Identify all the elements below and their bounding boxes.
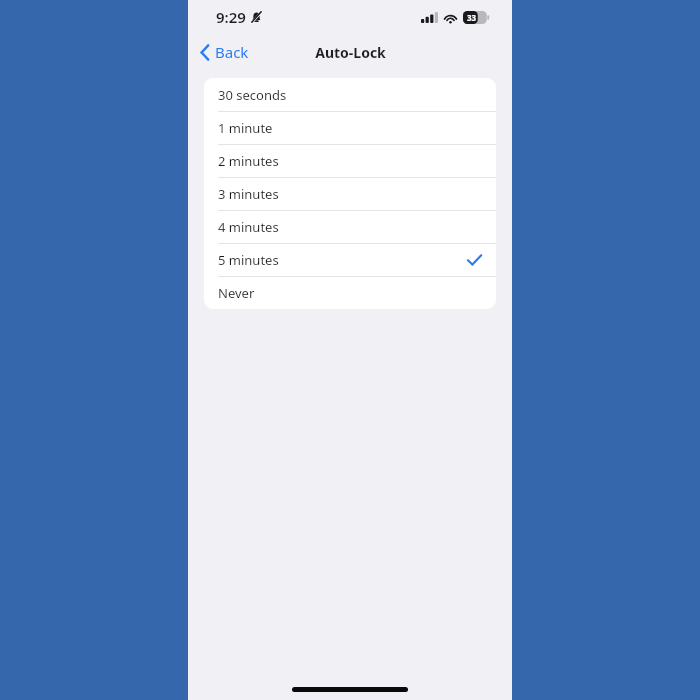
button[interactable]: 2 minutes (204, 145, 496, 177)
staticText: 33 (467, 12, 477, 23)
button[interactable]: 1 minute (204, 112, 496, 144)
staticText: Never (218, 284, 255, 302)
button[interactable]: 3 minutes (204, 178, 496, 210)
staticText: Auto-Lock (315, 43, 386, 62)
button[interactable]: 5 minutes (204, 244, 496, 276)
button[interactable]: 4 minutes (204, 211, 496, 243)
staticText: 1 minute (218, 119, 273, 137)
staticText: 5 minutes (218, 251, 279, 269)
staticText: 9:29 (216, 7, 246, 27)
staticText: 4 minutes (218, 218, 279, 236)
button[interactable]: Back (188, 34, 259, 70)
button[interactable]: Never (204, 277, 496, 309)
button[interactable]: 30 seconds (204, 78, 496, 111)
staticText: 30 seconds (218, 86, 287, 104)
staticText: 3 minutes (218, 185, 279, 203)
staticText: 2 minutes (218, 152, 279, 170)
staticText: Back (215, 42, 249, 62)
